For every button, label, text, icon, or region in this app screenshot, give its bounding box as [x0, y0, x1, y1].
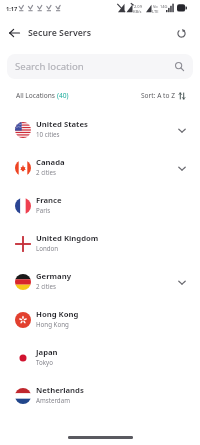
staticText: Hong Kong — [36, 309, 79, 319]
button[interactable]: Back — [3, 22, 25, 44]
staticText: All Locations — [16, 91, 57, 100]
staticText: (40) — [57, 91, 69, 100]
button[interactable]: Japan — [0, 339, 200, 377]
staticText: Netherlands — [36, 385, 84, 395]
staticText: 2.09 — [134, 4, 142, 9]
staticText: Secure Servers — [28, 27, 92, 39]
staticText: Canada — [36, 157, 65, 167]
staticText: London — [36, 244, 59, 252]
staticText: LTE — [152, 9, 159, 14]
button[interactable]: France — [0, 187, 200, 225]
staticText: United Kingdom — [36, 233, 99, 243]
staticText: 10 cities — [36, 130, 60, 138]
staticText: KB/s — [133, 9, 142, 14]
staticText: 2 cities — [36, 168, 56, 176]
button[interactable]: Expand — [175, 275, 189, 289]
staticText: 1:17 — [6, 5, 18, 13]
button[interactable]: Sort: A to Z — [141, 91, 186, 100]
button[interactable]: Refresh — [171, 23, 191, 43]
staticText: Hong Kong — [36, 320, 69, 328]
staticText: Search location — [15, 60, 84, 73]
staticText: 2 cities — [36, 282, 56, 290]
staticText: Amsterdam — [36, 396, 70, 404]
staticText: Sort: A to Z — [141, 91, 175, 100]
staticText: Japan — [36, 347, 58, 357]
staticText: 14G — [160, 4, 168, 9]
staticText: France — [36, 195, 62, 205]
staticText: Paris — [36, 206, 51, 214]
button[interactable]: Germany — [0, 263, 200, 301]
button[interactable]: Canada — [0, 149, 200, 187]
staticText: Vo — [153, 4, 158, 9]
staticText: Tokyo — [36, 358, 53, 366]
button[interactable]: United States — [0, 111, 200, 149]
button[interactable]: Expand — [175, 123, 189, 137]
staticText: United States — [36, 119, 88, 129]
button[interactable]: Expand — [175, 161, 189, 175]
button[interactable]: United Kingdom — [0, 225, 200, 263]
button[interactable]: Search location — [7, 54, 193, 79]
button[interactable]: Hong Kong — [0, 301, 200, 339]
button[interactable]: Netherlands — [0, 377, 200, 415]
button[interactable]: All Locations — [16, 91, 69, 100]
staticText: Germany — [36, 271, 72, 281]
